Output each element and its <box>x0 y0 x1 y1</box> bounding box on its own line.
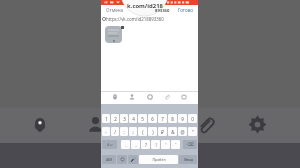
button[interactable]: 9 <box>178 114 187 123</box>
button[interactable]: 3 <box>120 114 128 123</box>
button[interactable]: #+= <box>102 140 117 149</box>
staticText: ₽ <box>161 129 164 135</box>
button[interactable]: 6 <box>148 114 157 123</box>
staticText: Ввод <box>184 157 193 162</box>
button[interactable]: Contact <box>87 116 104 133</box>
button[interactable]: 1 <box>102 114 110 123</box>
button[interactable]: @ <box>178 127 187 136</box>
button[interactable]: ☺ <box>117 155 127 164</box>
button[interactable]: ⌫ <box>183 140 197 149</box>
staticText: #+= <box>107 143 113 147</box>
button[interactable]: ; <box>129 127 137 136</box>
staticText: АБВ <box>106 158 112 162</box>
staticText: 1 <box>105 116 108 122</box>
staticText: , <box>135 142 137 148</box>
staticText: ; <box>132 129 134 135</box>
staticText: 7 <box>161 116 164 122</box>
button[interactable]: 5 <box>138 114 147 123</box>
staticText: 2 <box>114 116 117 122</box>
button[interactable]: : <box>120 127 128 136</box>
staticText: 8 <box>171 116 174 122</box>
button[interactable]: 8 <box>168 114 177 123</box>
staticText: https://vk.com/id218893360 <box>106 16 164 22</box>
button[interactable]: ? <box>141 140 150 149</box>
button[interactable] <box>105 26 122 43</box>
staticText: ☺ <box>120 157 125 162</box>
button[interactable]: - <box>102 127 110 136</box>
staticText: / <box>114 129 116 135</box>
button[interactable]: ' <box>161 140 170 149</box>
button[interactable]: & <box>168 127 177 136</box>
button[interactable]: 7 <box>158 114 167 123</box>
button[interactable]: Attach <box>196 115 215 134</box>
button[interactable]: Contact <box>129 94 135 100</box>
staticText: Готово <box>178 7 193 13</box>
staticText: 9 <box>181 116 184 122</box>
staticText: Пробел <box>152 157 166 162</box>
staticText: k.com/id218 <box>119 2 171 10</box>
staticText: @ <box>180 129 185 135</box>
staticText: 5 <box>141 116 144 122</box>
staticText: Отмена <box>106 7 124 13</box>
staticText: ⌫ <box>187 142 194 147</box>
button[interactable]: ` <box>171 140 180 149</box>
button[interactable]: Attach <box>164 94 170 100</box>
staticText: ! <box>155 142 157 148</box>
staticText: " <box>192 129 194 135</box>
button[interactable]: Photo <box>181 94 187 100</box>
staticText: ` <box>175 142 177 148</box>
button[interactable]: Ввод <box>179 155 197 164</box>
staticText: ? <box>145 142 147 148</box>
button[interactable]: Settings <box>248 115 267 134</box>
staticText: 0 <box>191 116 194 122</box>
staticText: 893360 <box>155 8 170 14</box>
staticText: ) <box>152 129 154 135</box>
button[interactable]: / <box>111 127 119 136</box>
button[interactable]: Location <box>112 94 118 100</box>
staticText: ' <box>165 142 167 148</box>
button[interactable]: 4 <box>129 114 137 123</box>
staticText: 🎤 <box>130 157 136 162</box>
staticText: & <box>171 129 175 135</box>
button[interactable]: . <box>121 140 130 149</box>
button[interactable]: ) <box>148 127 157 136</box>
button[interactable]: 2 <box>111 114 119 123</box>
button[interactable]: " <box>188 127 197 136</box>
staticText: 4 <box>132 116 135 122</box>
staticText: - <box>105 129 107 135</box>
button[interactable]: Пробел <box>139 155 178 164</box>
button[interactable]: ! <box>151 140 160 149</box>
staticText: ( <box>142 129 144 135</box>
button[interactable]: Location <box>32 117 48 133</box>
staticText: 6 <box>151 116 154 122</box>
button[interactable]: ₽ <box>158 127 167 136</box>
button[interactable]: АБВ <box>102 155 116 164</box>
button[interactable]: 0 <box>188 114 197 123</box>
staticText: : <box>123 129 125 135</box>
button[interactable]: 🎤 <box>128 155 138 164</box>
button[interactable]: Emoji <box>147 94 153 100</box>
staticText: 3 <box>123 116 126 122</box>
staticText: . <box>125 142 127 148</box>
button[interactable]: , <box>131 140 140 149</box>
button[interactable]: ( <box>138 127 147 136</box>
